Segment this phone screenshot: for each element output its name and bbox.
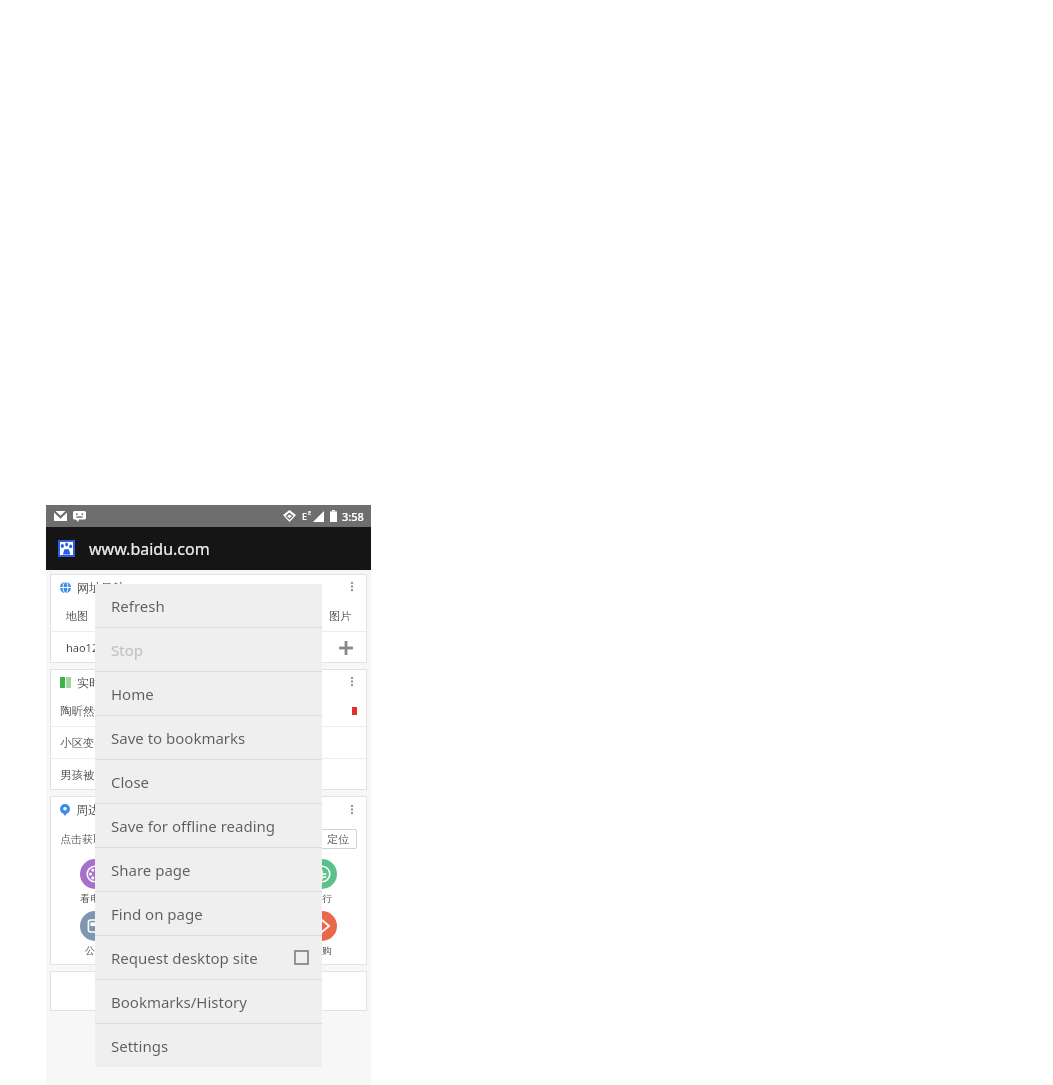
button[interactable]: 视频 <box>152 606 178 626</box>
button[interactable]: 快递 <box>215 909 277 959</box>
button[interactable]: Settings <box>95 1024 322 1067</box>
button[interactable]: 地图 <box>140 909 202 959</box>
staticText: 看电影 <box>80 892 110 905</box>
staticText: 图片 <box>329 609 351 623</box>
button[interactable]: Save to bookmarks <box>95 716 322 759</box>
staticText: 团购 <box>312 944 332 957</box>
staticText: Request desktop site <box>111 948 258 968</box>
staticText: Bookmarks/History <box>111 992 247 1012</box>
button[interactable]: Save for offline reading <box>95 804 322 847</box>
button: Stop <box>95 628 322 671</box>
button[interactable]: Request desktop site <box>95 936 322 979</box>
staticText: Share page <box>111 860 191 880</box>
button[interactable]: 地图 <box>64 606 90 626</box>
staticText: hao123 <box>66 640 105 655</box>
button[interactable]: Bookmarks/History <box>95 980 322 1023</box>
button[interactable]: 陶昕然怀孕了 <box>50 695 367 726</box>
staticText: 银行 <box>312 892 332 905</box>
staticText: 小区变身"动物园" <box>60 735 150 751</box>
button[interactable]: Site icon <box>60 542 73 555</box>
button[interactable]: 银行 <box>291 857 353 907</box>
staticText: 视频 <box>154 609 176 623</box>
staticText: Find on page <box>111 904 203 924</box>
staticText: 点击获取当前位置 <box>60 832 148 846</box>
staticText: 快递 <box>236 944 256 957</box>
button[interactable]: 公交 <box>64 909 126 959</box>
staticText: Close <box>111 772 150 792</box>
staticText: 网址导航 <box>77 580 125 595</box>
staticText: Refresh <box>111 596 165 616</box>
button[interactable]: Add shortcut <box>339 641 353 655</box>
button[interactable]: 图片 <box>327 606 353 626</box>
button[interactable]: 团购 <box>291 909 353 959</box>
button[interactable]: More options <box>345 577 359 597</box>
button[interactable]: 看电影 <box>64 857 126 907</box>
staticText: Save to bookmarks <box>111 728 246 748</box>
staticText: 实时热点 <box>77 675 125 690</box>
button[interactable]: hao123 <box>64 637 107 658</box>
button[interactable]: Home <box>95 672 322 715</box>
staticText: www.baidu.com <box>89 538 210 560</box>
staticText: 周边生活 <box>76 802 124 817</box>
staticText: Stop <box>111 640 143 660</box>
staticText: 地图 <box>161 944 181 957</box>
staticText: Save for offline reading <box>111 816 276 836</box>
staticText: 陶昕然怀孕了 <box>60 704 129 718</box>
button[interactable]: 男孩被困电梯 <box>50 759 367 790</box>
button[interactable]: 小区变身"动物园" <box>50 727 367 758</box>
staticText: Settings <box>111 1036 169 1056</box>
button[interactable]: 定位 <box>319 829 357 849</box>
button[interactable]: More options <box>345 800 359 820</box>
staticText: E <box>302 510 308 522</box>
button[interactable]: More options <box>345 672 359 692</box>
staticText: 男孩被困电梯 <box>60 768 129 782</box>
button[interactable]: Share page <box>95 848 322 891</box>
staticText: 地图 <box>66 609 88 623</box>
staticText: E <box>308 509 312 517</box>
staticText: 公交 <box>85 944 105 957</box>
staticText: 定位 <box>327 832 349 846</box>
button[interactable]: Refresh <box>95 584 322 627</box>
button[interactable]: Find on page <box>95 892 322 935</box>
button[interactable]: Close <box>95 760 322 803</box>
button[interactable]: 美食 <box>140 857 202 907</box>
staticText: Home <box>111 684 154 704</box>
staticText: 3:58 <box>342 509 364 524</box>
